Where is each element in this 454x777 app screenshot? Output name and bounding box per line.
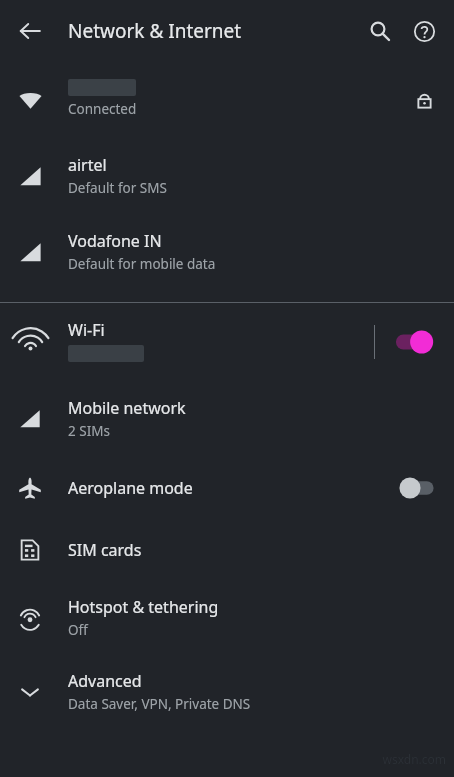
- button[interactable]: Hotspot & tethering: [0, 581, 454, 655]
- staticText: 2 SIMs: [68, 422, 110, 440]
- button[interactable]: Mobile network: [0, 381, 454, 457]
- staticText: Mobile network: [68, 397, 186, 419]
- button[interactable]: Back: [6, 7, 54, 55]
- staticText: Advanced: [68, 670, 142, 692]
- staticText: airtel: [68, 154, 107, 176]
- staticText: wsxdn.com: [382, 751, 446, 767]
- staticText: Default for mobile data: [68, 255, 216, 273]
- staticText: Off: [68, 621, 88, 639]
- staticText: SIM cards: [68, 539, 142, 561]
- staticText: Default for SMS: [68, 179, 167, 197]
- button[interactable]: Aeroplane mode toggle: [390, 468, 442, 508]
- button[interactable]: Search: [358, 9, 402, 53]
- button[interactable]: Wi-Fi: [0, 303, 454, 381]
- button[interactable]: Help: [402, 9, 446, 53]
- button[interactable]: Aeroplane mode: [0, 457, 454, 519]
- button[interactable]: Wi-Fi toggle: [390, 322, 446, 362]
- staticText: Aeroplane mode: [68, 477, 193, 499]
- button[interactable]: SIM cards: [0, 519, 454, 581]
- button[interactable]: airtel: [0, 138, 454, 214]
- staticText: Vodafone IN: [68, 230, 162, 252]
- button[interactable]: Vodafone IN: [0, 214, 454, 290]
- staticText: Network & Internet: [68, 18, 242, 44]
- staticText: Hotspot & tethering: [68, 596, 219, 618]
- staticText: Connected: [68, 100, 137, 118]
- staticText: Data Saver, VPN, Private DNS: [68, 695, 251, 713]
- button[interactable]: Advanced: [0, 655, 454, 729]
- button[interactable]: Connected: [0, 62, 454, 138]
- staticText: Wi-Fi: [68, 319, 105, 341]
